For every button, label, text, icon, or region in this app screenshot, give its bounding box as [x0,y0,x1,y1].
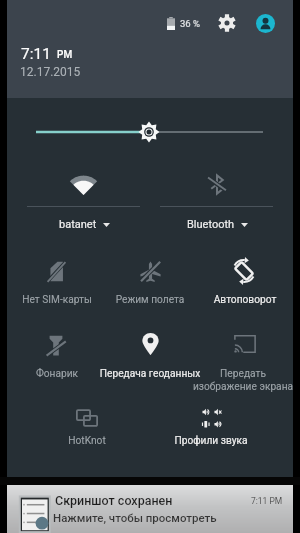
button[interactable]: User profile [256,14,275,33]
button[interactable]: Bluetooth [150,155,293,250]
staticText: Передача геоданных [75,368,225,380]
staticText: PM [57,49,73,61]
staticText: HotKnot [12,435,162,447]
button[interactable]: Нет SIM-карты [7,250,102,318]
staticText: Профили звука [136,435,286,447]
button[interactable]: Brightness [0,112,300,152]
button[interactable]: Режим полета [102,250,197,318]
staticText: 7:11 [21,45,51,63]
button[interactable]: Settings [215,11,239,35]
staticText: Нажмите, чтобы просмотреть [53,511,217,524]
staticText: 7:11 PM [251,496,283,506]
button[interactable]: Передать изображение экрана [197,320,293,392]
staticText: Нет SIM-карты [0,294,132,306]
staticText: batanet [59,218,97,231]
staticText: Скриншот сохранен [55,493,173,508]
staticText: Режим полета [75,294,225,306]
staticText: 12.17.2015 [20,65,81,79]
button[interactable]: Передача геоданных [102,320,197,392]
button[interactable]: HotKnot [7,396,150,460]
staticText: 36 % [180,18,200,29]
button[interactable]: Автоповорот [197,250,293,318]
button[interactable]: Wi-Fi batanet [7,155,150,250]
button[interactable]: Фонарик [7,320,102,392]
staticText: Передать изображение экрана [168,368,300,392]
staticText: Фонарик [0,368,132,380]
staticText: Автоповорот [170,294,300,306]
staticText: Bluetooth [187,218,235,231]
button[interactable]: Профили звука [150,396,293,460]
button[interactable]: Скриншот сохранен [7,485,293,533]
